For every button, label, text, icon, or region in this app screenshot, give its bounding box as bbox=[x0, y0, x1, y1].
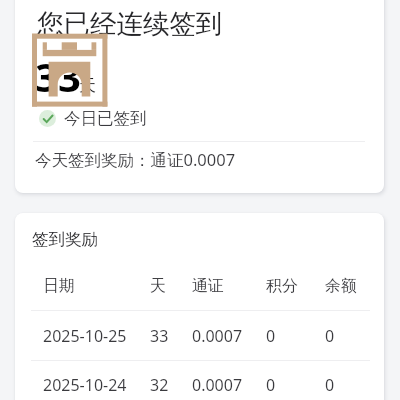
staticText: 33 bbox=[150, 325, 169, 347]
staticText: 积分 bbox=[266, 276, 298, 296]
staticText: 0.0007 bbox=[192, 325, 243, 347]
button[interactable]: 今日已签到 bbox=[39, 108, 147, 129]
staticText: 日期 bbox=[43, 276, 75, 296]
staticText: 通证 bbox=[192, 276, 224, 296]
staticText: 余额 bbox=[325, 276, 357, 296]
staticText: 2025-10-24 bbox=[43, 374, 127, 396]
other: 连续签到图标 bbox=[0, 0, 400, 400]
staticText: 33 bbox=[35, 49, 81, 103]
staticText: 今日已签到 bbox=[64, 108, 147, 129]
staticText: 32 bbox=[150, 374, 169, 396]
staticText: 天 bbox=[150, 276, 166, 296]
staticText: 0 bbox=[325, 374, 335, 396]
staticText: 0 bbox=[325, 325, 335, 347]
staticText: 今天签到奖励：通证0.0007 bbox=[35, 148, 236, 171]
staticText: 0 bbox=[266, 374, 276, 396]
staticText: 天 bbox=[79, 75, 96, 96]
staticText: 您已经连续签到 bbox=[37, 7, 223, 40]
staticText: 2025-10-25 bbox=[43, 325, 127, 347]
staticText: 0.0007 bbox=[192, 374, 243, 396]
staticText: 0 bbox=[266, 325, 276, 347]
staticText: 签到奖励 bbox=[32, 229, 98, 250]
